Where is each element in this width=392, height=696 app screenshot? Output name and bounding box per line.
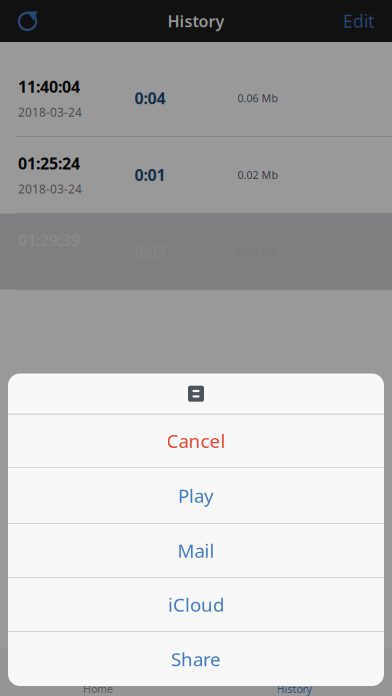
- button[interactable]: Play: [8, 468, 384, 523]
- staticText: History: [167, 10, 224, 32]
- staticText: 01:29:39: [18, 229, 80, 251]
- button[interactable]: Mail: [8, 524, 384, 577]
- staticText: 2018-03-24: [18, 104, 82, 120]
- staticText: 0:01: [134, 164, 165, 185]
- staticText: Edit: [343, 9, 374, 32]
- staticText: Cancel: [166, 428, 225, 453]
- button[interactable]: Refresh: [8, 0, 49, 42]
- staticText: Play: [178, 483, 214, 508]
- staticText: 0.02 Mb: [237, 168, 278, 182]
- staticText: Mail: [177, 538, 214, 563]
- button[interactable]: Cancel: [8, 415, 384, 467]
- button[interactable]: 01:25:24: [0, 137, 392, 213]
- button[interactable]: Home: [0, 647, 196, 696]
- staticText: 01:25:24: [18, 153, 80, 174]
- staticText: History: [276, 682, 311, 696]
- button[interactable]: 11:40:04: [0, 60, 392, 136]
- staticText: Home: [83, 682, 113, 696]
- staticText: 2018-03-24: [18, 181, 82, 197]
- staticText: 0.06 Mb: [237, 91, 278, 105]
- button[interactable]: Share: [8, 632, 384, 686]
- staticText: Share: [171, 647, 221, 671]
- button[interactable]: Edit: [333, 0, 384, 42]
- staticText: iCloud: [168, 592, 224, 617]
- button[interactable]: History: [196, 647, 392, 696]
- staticText: 0:04: [134, 87, 165, 109]
- button[interactable]: iCloud: [8, 578, 384, 631]
- staticText: 11:40:04: [18, 76, 80, 97]
